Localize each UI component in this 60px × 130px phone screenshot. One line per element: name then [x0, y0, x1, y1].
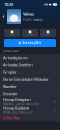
button[interactable]: Çıkış Yap [0, 114, 60, 121]
staticText: Arkadaş İstekleri [3, 62, 33, 67]
button[interactable]: Arkadaşlarım [0, 54, 60, 61]
staticText: Valvas [23, 11, 34, 17]
staticText: Rozetler [3, 84, 17, 89]
staticText: 10:29 [4, 2, 13, 7]
staticText: Ekran Görüntüleri/Videolar [3, 76, 49, 82]
staticText: Çıkış Yap [3, 115, 19, 120]
staticText: Gruplar [3, 69, 17, 75]
button[interactable]: Paylaş [4, 29, 20, 37]
staticText: Ayarlar [45, 34, 51, 35]
button[interactable]: Rozetler [0, 83, 60, 90]
button[interactable]: Hesap Detayları [0, 97, 60, 106]
button[interactable]: Envanter [0, 90, 60, 97]
staticText: steam, epic, xbox, psn [3, 111, 33, 114]
button[interactable]: Hesap Bağlantı [0, 106, 60, 114]
staticText: SOSYAL ALAN [3, 49, 19, 53]
button[interactable]: Düzenle [22, 29, 38, 37]
button[interactable]: Arkadaş İstekleri [0, 61, 60, 68]
staticText: Hesap Detayları [3, 97, 31, 102]
button[interactable]: Ayarlar [40, 29, 56, 37]
button[interactable]: Ekran Görüntüleri/Videolar [0, 76, 60, 83]
staticText: Bağlantı, üyelik, abonelik [3, 102, 38, 106]
staticText: Paylaş [9, 34, 14, 35]
button[interactable]: Arkadaş Ekle [4, 39, 56, 47]
button[interactable]: Back [0, 9, 7, 24]
staticText: Hesap Bağlantı [3, 105, 29, 111]
staticText: Envanter [3, 91, 18, 96]
button[interactable]: Gruplar [0, 68, 60, 76]
staticText: Düzenle [27, 34, 33, 35]
staticText: Arkadaşlarım [3, 55, 28, 60]
staticText: Arkadaş Ekle [22, 41, 41, 45]
staticText: Profili tamamla [23, 18, 42, 22]
